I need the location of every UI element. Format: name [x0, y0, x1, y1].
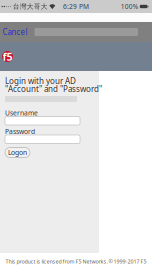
staticText: Username	[5, 109, 38, 117]
staticText: "Account" and "Password"	[5, 84, 102, 94]
staticText: Logon	[8, 148, 27, 157]
staticText: Login with your AD	[5, 76, 76, 86]
staticText: 6:29 PM	[63, 2, 89, 11]
staticText: 100%	[121, 2, 139, 11]
staticText: Password	[5, 127, 35, 136]
staticText: 台灣大哥大	[13, 2, 48, 11]
staticText: f5	[2, 49, 12, 64]
button[interactable]: Logon	[5, 147, 30, 157]
button[interactable]: Cancel	[0, 24, 29, 40]
staticText: This product is licensed from F5 Network…	[5, 258, 146, 265]
staticText: Cancel	[2, 27, 27, 37]
